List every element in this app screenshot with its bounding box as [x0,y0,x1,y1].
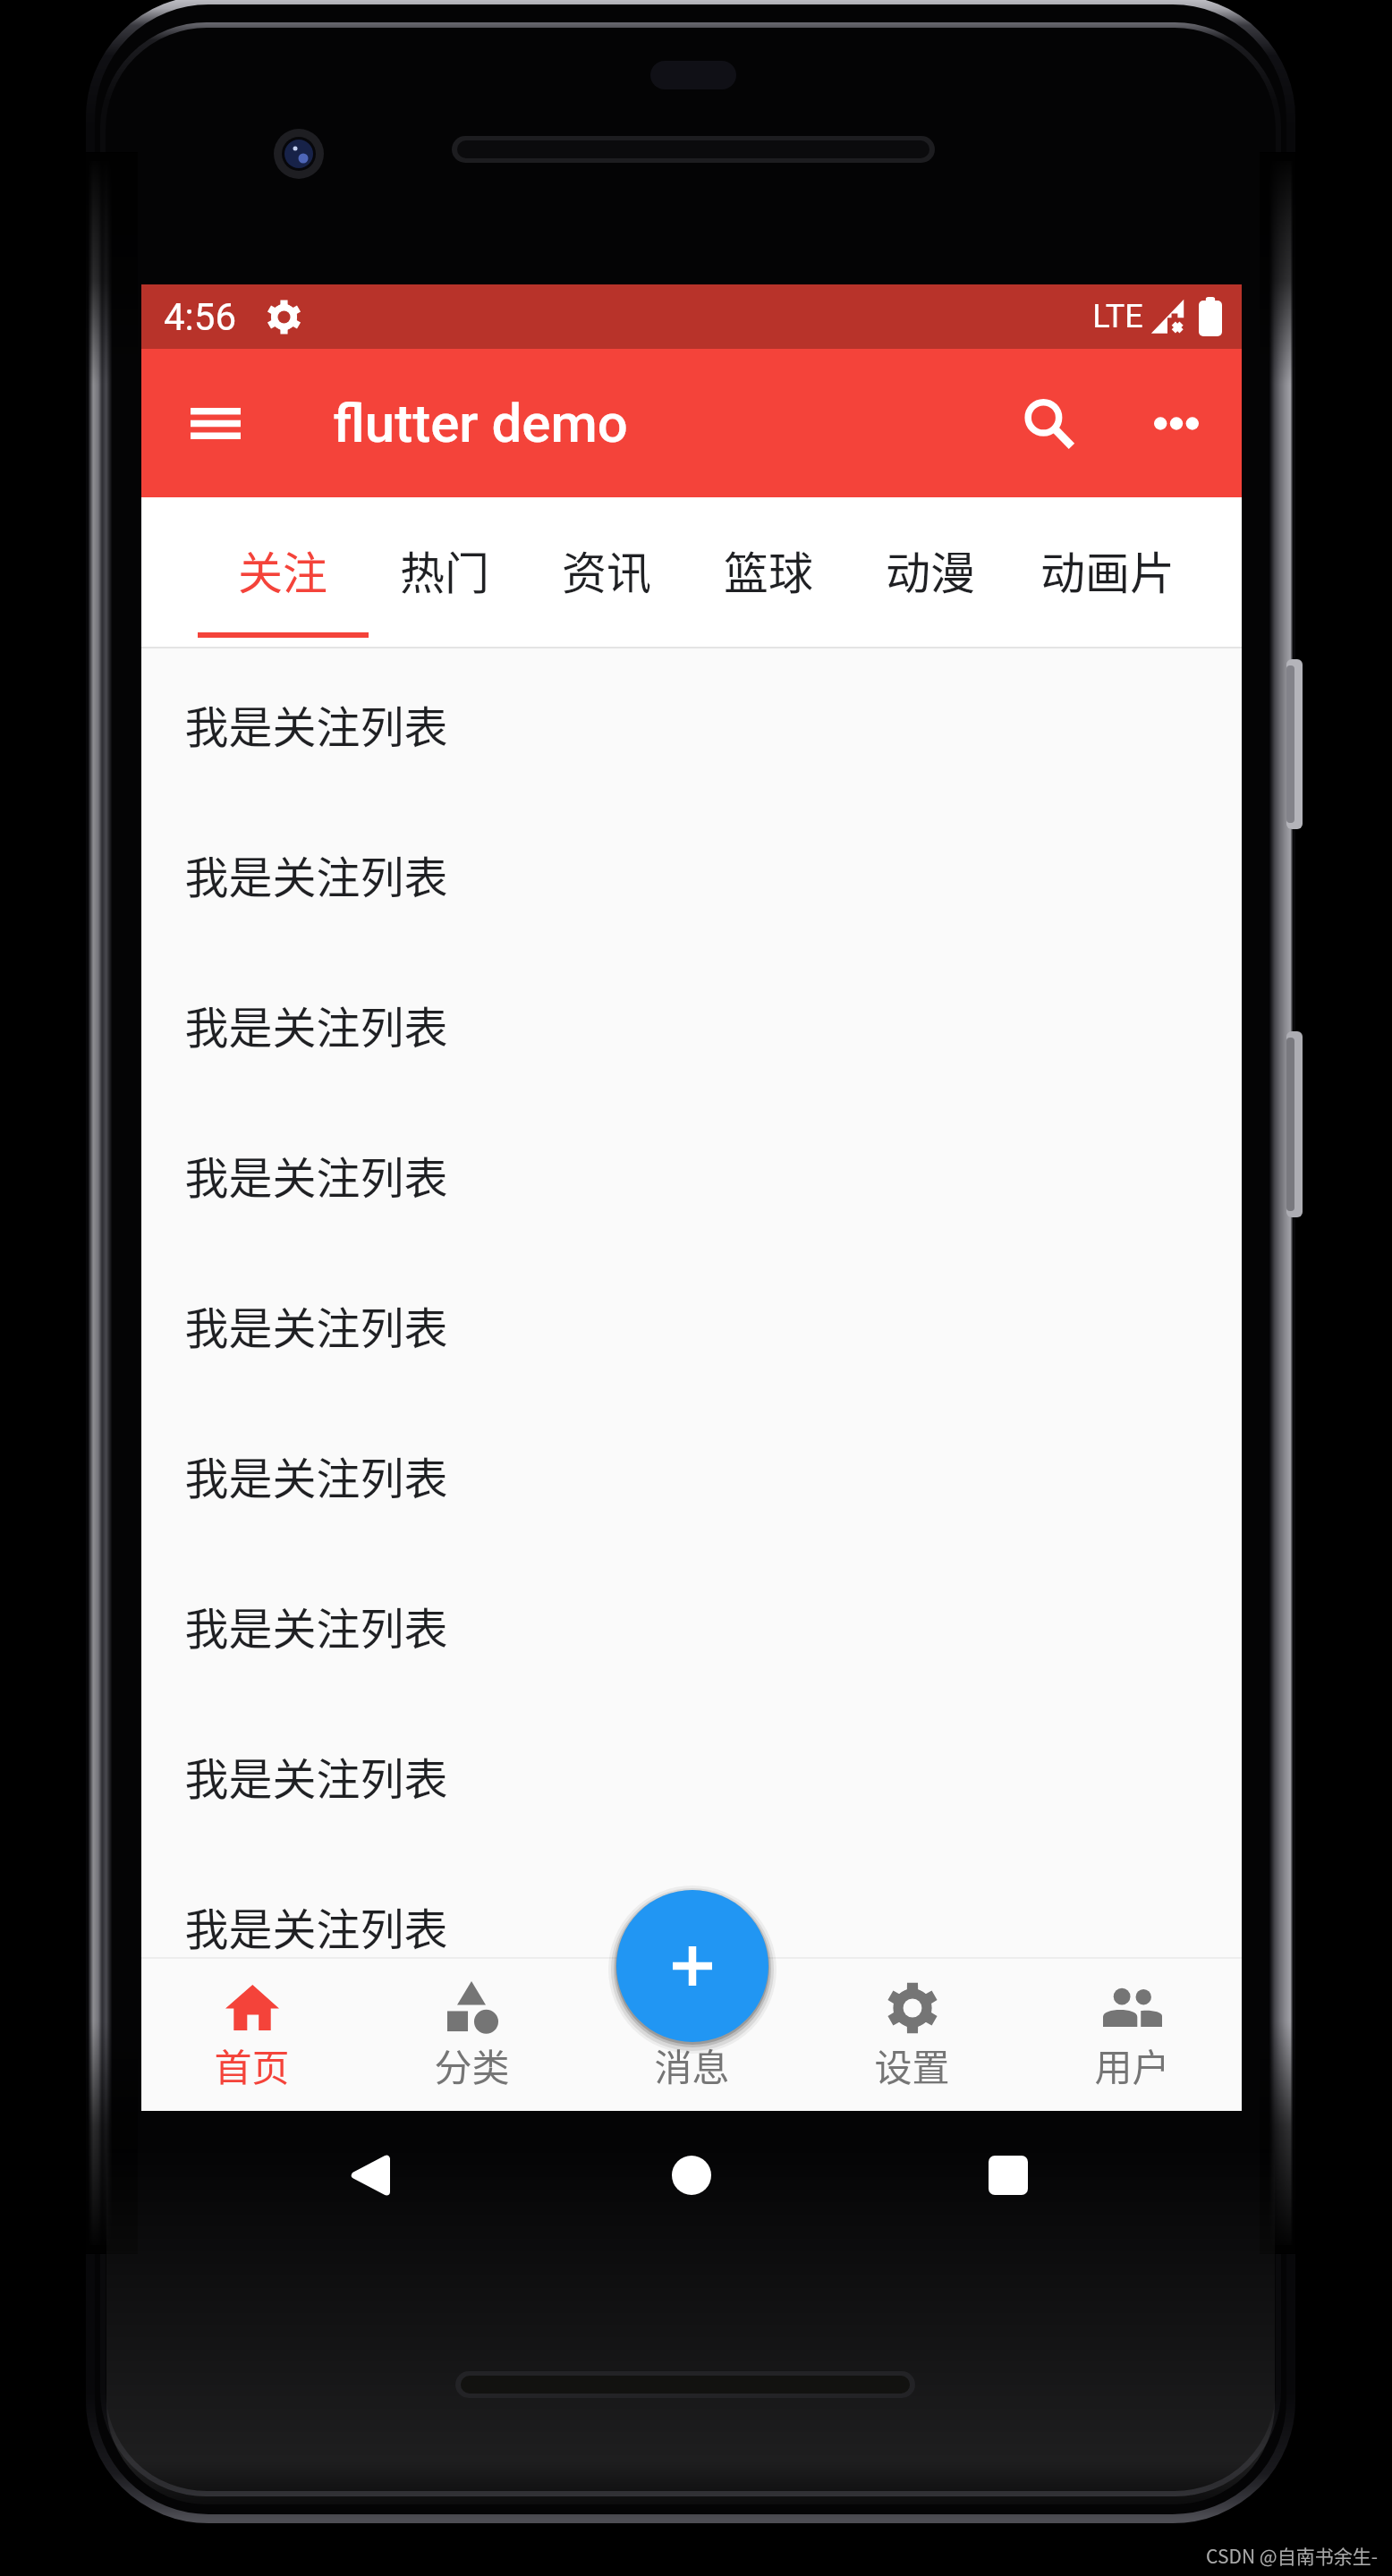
button[interactable]: 首页 [141,1957,361,2111]
staticText: 设置 [874,2038,950,2092]
button[interactable]: Back [338,2143,403,2207]
button[interactable]: Search [1004,378,1093,468]
button[interactable]: 用户 [1022,1957,1242,2111]
button[interactable]: 分类 [361,1957,581,2111]
button[interactable]: 我是关注列表 [141,1099,1242,1250]
button[interactable]: 我是关注列表 [141,1550,1242,1700]
staticText: 消息 [654,2038,730,2092]
staticText: 我是关注列表 [184,1143,448,1207]
button[interactable]: 资讯 [525,497,687,648]
button[interactable]: 我是关注列表 [141,648,1242,799]
button[interactable]: More options [1136,383,1217,463]
staticText: 首页 [214,2038,290,2092]
button[interactable]: 我是关注列表 [141,1400,1242,1550]
staticText: 我是关注列表 [184,1293,448,1357]
button[interactable]: 动画片 [1011,497,1203,648]
button[interactable]: Home [659,2143,724,2207]
staticText: 我是关注列表 [184,993,448,1056]
staticText: 我是关注列表 [184,843,448,906]
staticText: 动画片 [1040,538,1175,602]
staticText: 用户 [1094,2038,1170,2092]
button[interactable]: Open navigation menu [176,384,255,462]
staticText: 我是关注列表 [184,1594,448,1657]
staticText: LTE [1092,298,1143,335]
staticText: 热门 [400,538,489,602]
staticText: 我是关注列表 [184,692,448,756]
staticText: 4:56 [164,295,236,339]
button[interactable]: Recent apps [976,2143,1040,2207]
button[interactable]: 关注 [201,497,363,648]
staticText: 我是关注列表 [184,1894,448,1958]
button[interactable]: 篮球 [687,497,849,648]
staticText: 关注 [238,538,327,602]
staticText: 分类 [434,2038,510,2092]
button[interactable]: 热门 [363,497,525,648]
staticText: 我是关注列表 [184,1744,448,1808]
staticText: 我是关注列表 [184,2024,448,2088]
staticText: 篮球 [724,538,813,602]
staticText: 资讯 [562,538,651,602]
button[interactable]: 我是关注列表 [141,1250,1242,1400]
staticText: flutter demo [333,392,628,454]
staticText: 我是关注列表 [184,1444,448,1507]
button[interactable]: 我是关注列表 [141,1700,1242,1851]
button[interactable]: 我是关注列表 [141,799,1242,949]
staticText: 动漫 [886,538,975,602]
button[interactable]: 设置 [802,1957,1022,2111]
button[interactable]: 动漫 [849,497,1011,648]
button[interactable]: 消息 [581,1957,802,2111]
button[interactable]: Add [616,1890,768,2042]
button[interactable]: 我是关注列表 [141,949,1242,1099]
button[interactable]: 我是关注列表 [141,1851,1242,2001]
button[interactable]: 我是关注列表 [141,2001,1242,2111]
staticText: CSDN @自南书余生- [1206,2542,1378,2569]
